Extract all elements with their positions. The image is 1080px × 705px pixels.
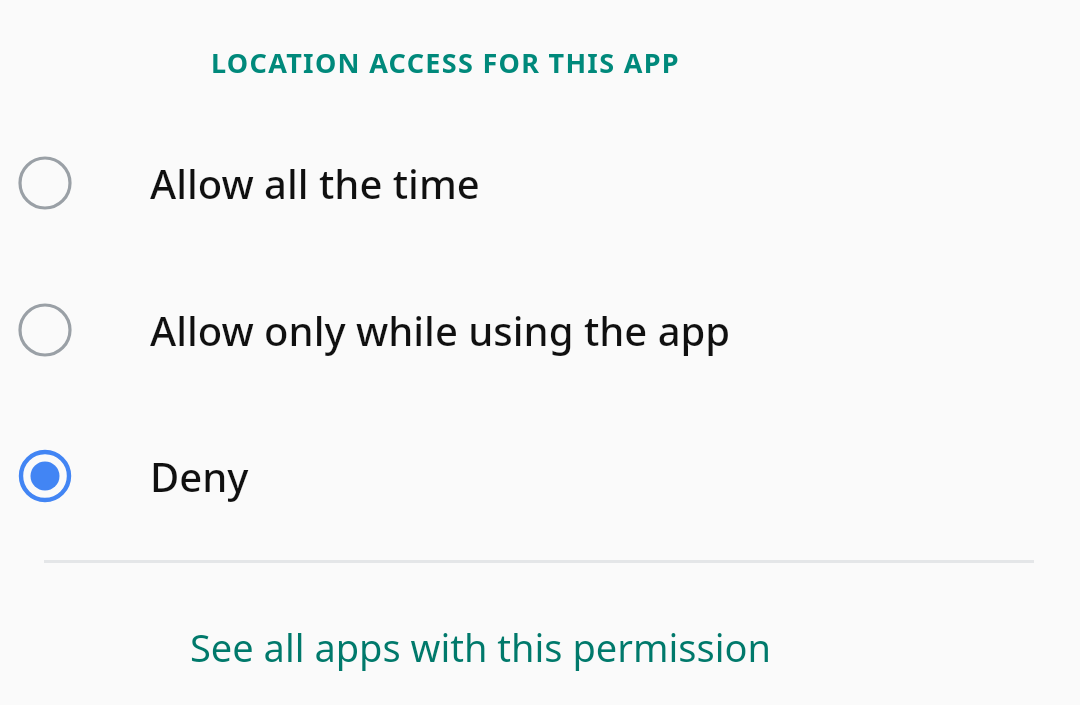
button[interactable]: See all apps with this permission — [0, 609, 1080, 685]
staticText: Deny — [150, 449, 249, 503]
button[interactable]: Allow only while using the app — [0, 280, 1080, 380]
staticText: Allow all the time — [150, 156, 480, 210]
staticText: LOCATION ACCESS FOR THIS APP — [211, 44, 680, 81]
staticText: Allow only while using the app — [150, 303, 731, 357]
button[interactable]: Deny — [0, 426, 1080, 526]
button[interactable]: Allow all the time — [0, 133, 1080, 233]
staticText: See all apps with this permission — [190, 621, 771, 673]
